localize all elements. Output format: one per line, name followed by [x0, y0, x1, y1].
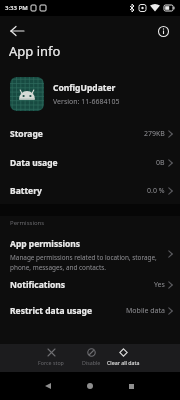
button[interactable]: Battery: [0, 177, 180, 204]
button[interactable]: Notifications: [0, 271, 180, 298]
staticText: Notifications: [10, 279, 66, 291]
staticText: Clear all data: [107, 359, 140, 366]
button[interactable]: Clear all data: [103, 344, 143, 372]
staticText: ConfigUpdater: [53, 82, 116, 94]
staticText: Permissions: [10, 219, 45, 227]
button[interactable]: [80, 376, 100, 396]
staticText: 0B: [156, 158, 165, 168]
button[interactable]: App permissions: [0, 234, 180, 274]
staticText: Disable: [82, 359, 101, 366]
staticText: Restrict data usage: [10, 305, 93, 317]
button[interactable]: Restrict data usage: [0, 297, 180, 324]
staticText: 0.0 %: [147, 186, 165, 196]
button[interactable]: ConfigUpdater: [0, 74, 180, 114]
staticText: Manage permissions related to location, …: [10, 253, 157, 262]
staticText: 3:33 PM: [5, 4, 28, 12]
button[interactable]: [121, 376, 141, 396]
staticText: App permissions: [10, 238, 81, 250]
button[interactable]: Force stop: [31, 344, 71, 372]
button[interactable]: Data usage: [0, 149, 180, 176]
button[interactable]: [6, 22, 28, 40]
button[interactable]: [152, 22, 174, 40]
staticText: 279KB: [144, 129, 165, 139]
staticText: Yes: [154, 280, 165, 290]
button[interactable]: Disable: [71, 344, 111, 372]
staticText: Data usage: [10, 157, 58, 169]
staticText: phone, messages, and contacts.: [10, 263, 106, 272]
staticText: Battery: [10, 185, 42, 197]
staticText: Storage: [10, 128, 43, 140]
staticText: Force stop: [38, 359, 64, 366]
staticText: Version: 11-6684105: [53, 97, 120, 107]
button[interactable]: [38, 376, 58, 396]
staticText: App info: [9, 42, 61, 60]
button[interactable]: Storage: [0, 120, 180, 147]
staticText: Mobile data: [126, 306, 165, 316]
